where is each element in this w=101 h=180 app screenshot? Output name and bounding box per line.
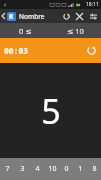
staticText: 0 ≤ [19, 26, 32, 36]
staticText: 3 [20, 164, 25, 174]
button[interactable]: ≤ 10 [50, 23, 101, 38]
staticText: 7 [5, 164, 10, 174]
button[interactable]: 10 [45, 158, 59, 180]
button[interactable]: Close [73, 9, 86, 23]
staticText: 00:03 [4, 45, 28, 56]
button[interactable]: 4 [30, 158, 45, 180]
button[interactable]: 1 [73, 158, 87, 180]
staticText: ≤ 10 [67, 26, 84, 36]
staticText: 18:11 [86, 1, 99, 8]
staticText: 4 [35, 164, 40, 174]
staticText: 10 [48, 164, 57, 174]
button[interactable]: Back [0, 9, 7, 23]
button[interactable]: 0 [59, 158, 73, 180]
button[interactable]: 3 [15, 158, 30, 180]
staticText: R [9, 12, 14, 21]
staticText: 8 [92, 164, 97, 174]
staticText: Nombre [19, 12, 45, 21]
button[interactable]: Restart [59, 9, 73, 23]
button[interactable]: Settings [86, 9, 100, 23]
button[interactable]: 8 [87, 158, 101, 180]
button[interactable]: Reset timer [81, 38, 101, 63]
button[interactable]: 7 [0, 158, 15, 180]
button[interactable]: 0 ≤ [0, 23, 50, 38]
staticText: 1 [78, 164, 83, 174]
staticText: 0 [64, 164, 69, 174]
staticText: 5 [41, 88, 61, 134]
